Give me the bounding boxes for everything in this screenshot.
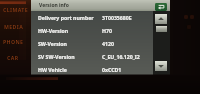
- staticText: MEDIA: [4, 23, 24, 30]
- button[interactable]: HW Vehicle: [31, 63, 153, 76]
- staticText: C_EU_16.120_I2: [102, 53, 140, 60]
- staticText: HW Vehicle: [38, 66, 102, 73]
- staticText: Version info: [39, 2, 69, 9]
- staticText: PHONE: [3, 38, 24, 45]
- button[interactable]: Scrollbar: [156, 26, 167, 32]
- staticText: CAR: [7, 54, 19, 61]
- staticText: CLIMATE: [3, 6, 29, 13]
- staticText: 3T0035680E: [102, 14, 132, 21]
- staticText: H70: [102, 27, 112, 34]
- button[interactable]: Scroll down: [155, 61, 167, 71]
- button[interactable]: Delivery port number: [31, 11, 153, 24]
- button[interactable]: HW-Version: [31, 24, 153, 37]
- button[interactable]: Scroll up: [155, 14, 167, 24]
- staticText: SV SW-Version: [38, 53, 102, 60]
- staticText: Delivery port number: [38, 14, 102, 21]
- staticText: SW-Version: [38, 40, 102, 47]
- button[interactable]: SW-Version: [31, 37, 153, 50]
- staticText: HW-Version: [38, 27, 102, 34]
- button[interactable]: SV SW-Version: [31, 50, 153, 63]
- button[interactable]: Back: [155, 3, 167, 11]
- staticText: 0xCCD1: [102, 66, 122, 73]
- staticText: 4120: [102, 40, 114, 47]
